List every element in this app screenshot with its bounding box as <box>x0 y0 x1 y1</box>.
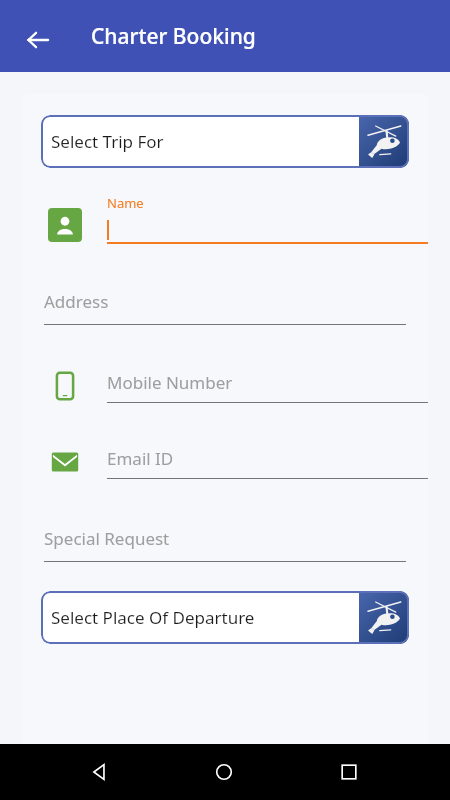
button[interactable]: Recents <box>325 748 373 796</box>
staticText: Special Request <box>44 527 170 550</box>
staticText: Mobile Number <box>107 371 233 394</box>
button[interactable]: Name <box>107 194 428 244</box>
button[interactable]: Back <box>16 18 60 62</box>
staticText: Email ID <box>107 447 174 470</box>
staticText: Select Place Of Departure <box>51 606 359 629</box>
button[interactable]: Home <box>200 748 248 796</box>
staticText: Address <box>44 290 109 313</box>
button[interactable]: Back <box>76 748 124 796</box>
button[interactable]: Mobile Number <box>107 363 428 403</box>
button[interactable]: Address <box>44 290 406 325</box>
button[interactable]: Email ID <box>107 439 428 479</box>
staticText: Select Trip For <box>51 130 359 153</box>
staticText: Name <box>107 194 144 212</box>
staticText: Charter Booking <box>91 22 256 51</box>
other: Person <box>48 208 82 242</box>
button[interactable]: Select Trip For <box>41 115 409 168</box>
button[interactable]: Select Place Of Departure <box>41 591 409 644</box>
button[interactable]: Special Request <box>44 527 406 562</box>
